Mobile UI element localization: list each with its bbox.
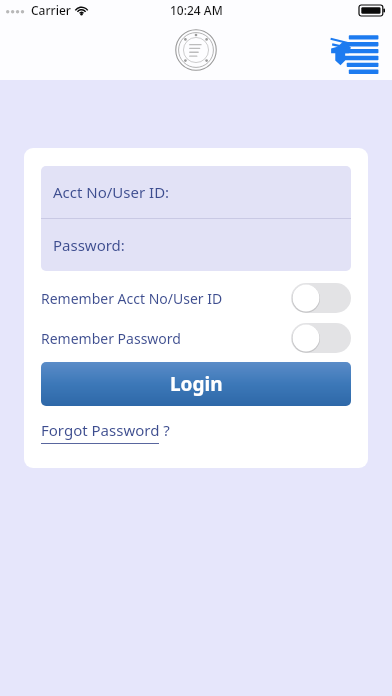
staticText: Carrier: [31, 2, 71, 18]
staticText: Password:: [53, 235, 125, 255]
button[interactable]: Acct No/User ID:: [41, 166, 351, 218]
staticText: Forgot Password ?: [41, 420, 170, 440]
button[interactable]: Login: [41, 362, 351, 406]
button[interactable]: Password:: [41, 219, 351, 271]
button[interactable]: Remember Acct No/User ID toggle: [291, 283, 351, 313]
button[interactable]: Menu: [328, 30, 380, 70]
button[interactable]: Forgot Password ?: [41, 420, 170, 444]
staticText: Acct No/User ID:: [53, 182, 170, 202]
staticText: Remember Acct No/User ID: [41, 289, 223, 308]
button[interactable]: Bank seal: [174, 28, 218, 72]
staticText: 10:24 AM: [170, 2, 223, 18]
staticText: Login: [170, 371, 223, 397]
button[interactable]: Remember Password toggle: [291, 323, 351, 353]
staticText: Remember Password: [41, 329, 181, 348]
